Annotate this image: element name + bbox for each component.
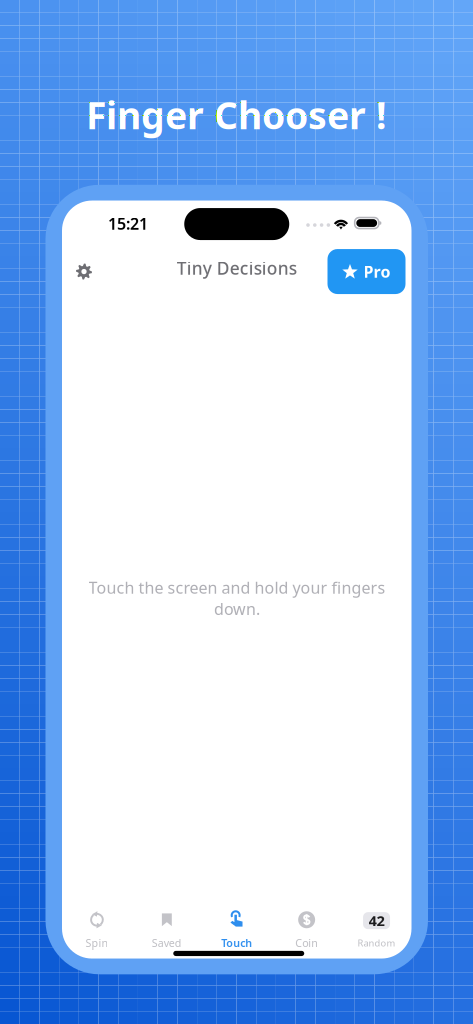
staticText: 42 (369, 911, 385, 930)
button[interactable]: 42 (342, 911, 411, 949)
button[interactable]: Saved (132, 910, 202, 950)
button[interactable]: Settings (62, 249, 106, 293)
staticText: 15:21 (108, 213, 148, 234)
staticText: Coin (295, 936, 318, 950)
button[interactable]: Spin (62, 910, 132, 950)
staticText: Tiny Decisions (177, 256, 297, 279)
staticText: Random (358, 937, 396, 949)
button[interactable]: Coin (272, 910, 342, 950)
staticText: Touch the screen and hold your fingers d… (88, 577, 385, 619)
staticText: Pro (363, 261, 390, 282)
staticText: Finger Chooser ! (86, 90, 387, 140)
button[interactable]: Pro (327, 249, 405, 294)
staticText: Touch (221, 936, 252, 950)
staticText: Spin (85, 936, 108, 950)
staticText: Saved (152, 936, 182, 950)
button[interactable]: Touch (202, 910, 272, 950)
